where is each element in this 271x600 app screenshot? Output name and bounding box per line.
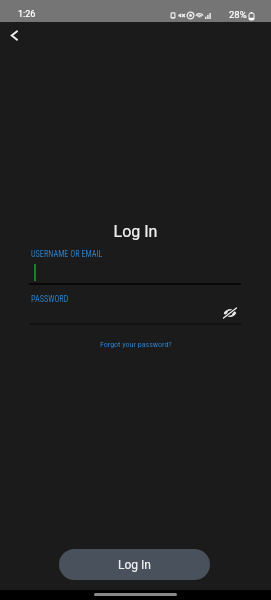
staticText: Log In bbox=[118, 558, 151, 572]
button[interactable]: Show password bbox=[219, 302, 241, 324]
staticText: USERNAME OR EMAIL bbox=[31, 249, 103, 259]
staticText: 1:26 bbox=[18, 9, 36, 20]
staticText: 28% bbox=[229, 9, 247, 20]
staticText: Log In bbox=[0, 222, 271, 241]
button[interactable] bbox=[29, 303, 241, 322]
button[interactable]: Forgot your password? bbox=[94, 337, 178, 352]
button[interactable]: Back bbox=[0, 22, 27, 49]
button[interactable]: Log In bbox=[59, 549, 210, 580]
button[interactable] bbox=[29, 259, 241, 283]
staticText: PASSWORD bbox=[31, 294, 69, 304]
